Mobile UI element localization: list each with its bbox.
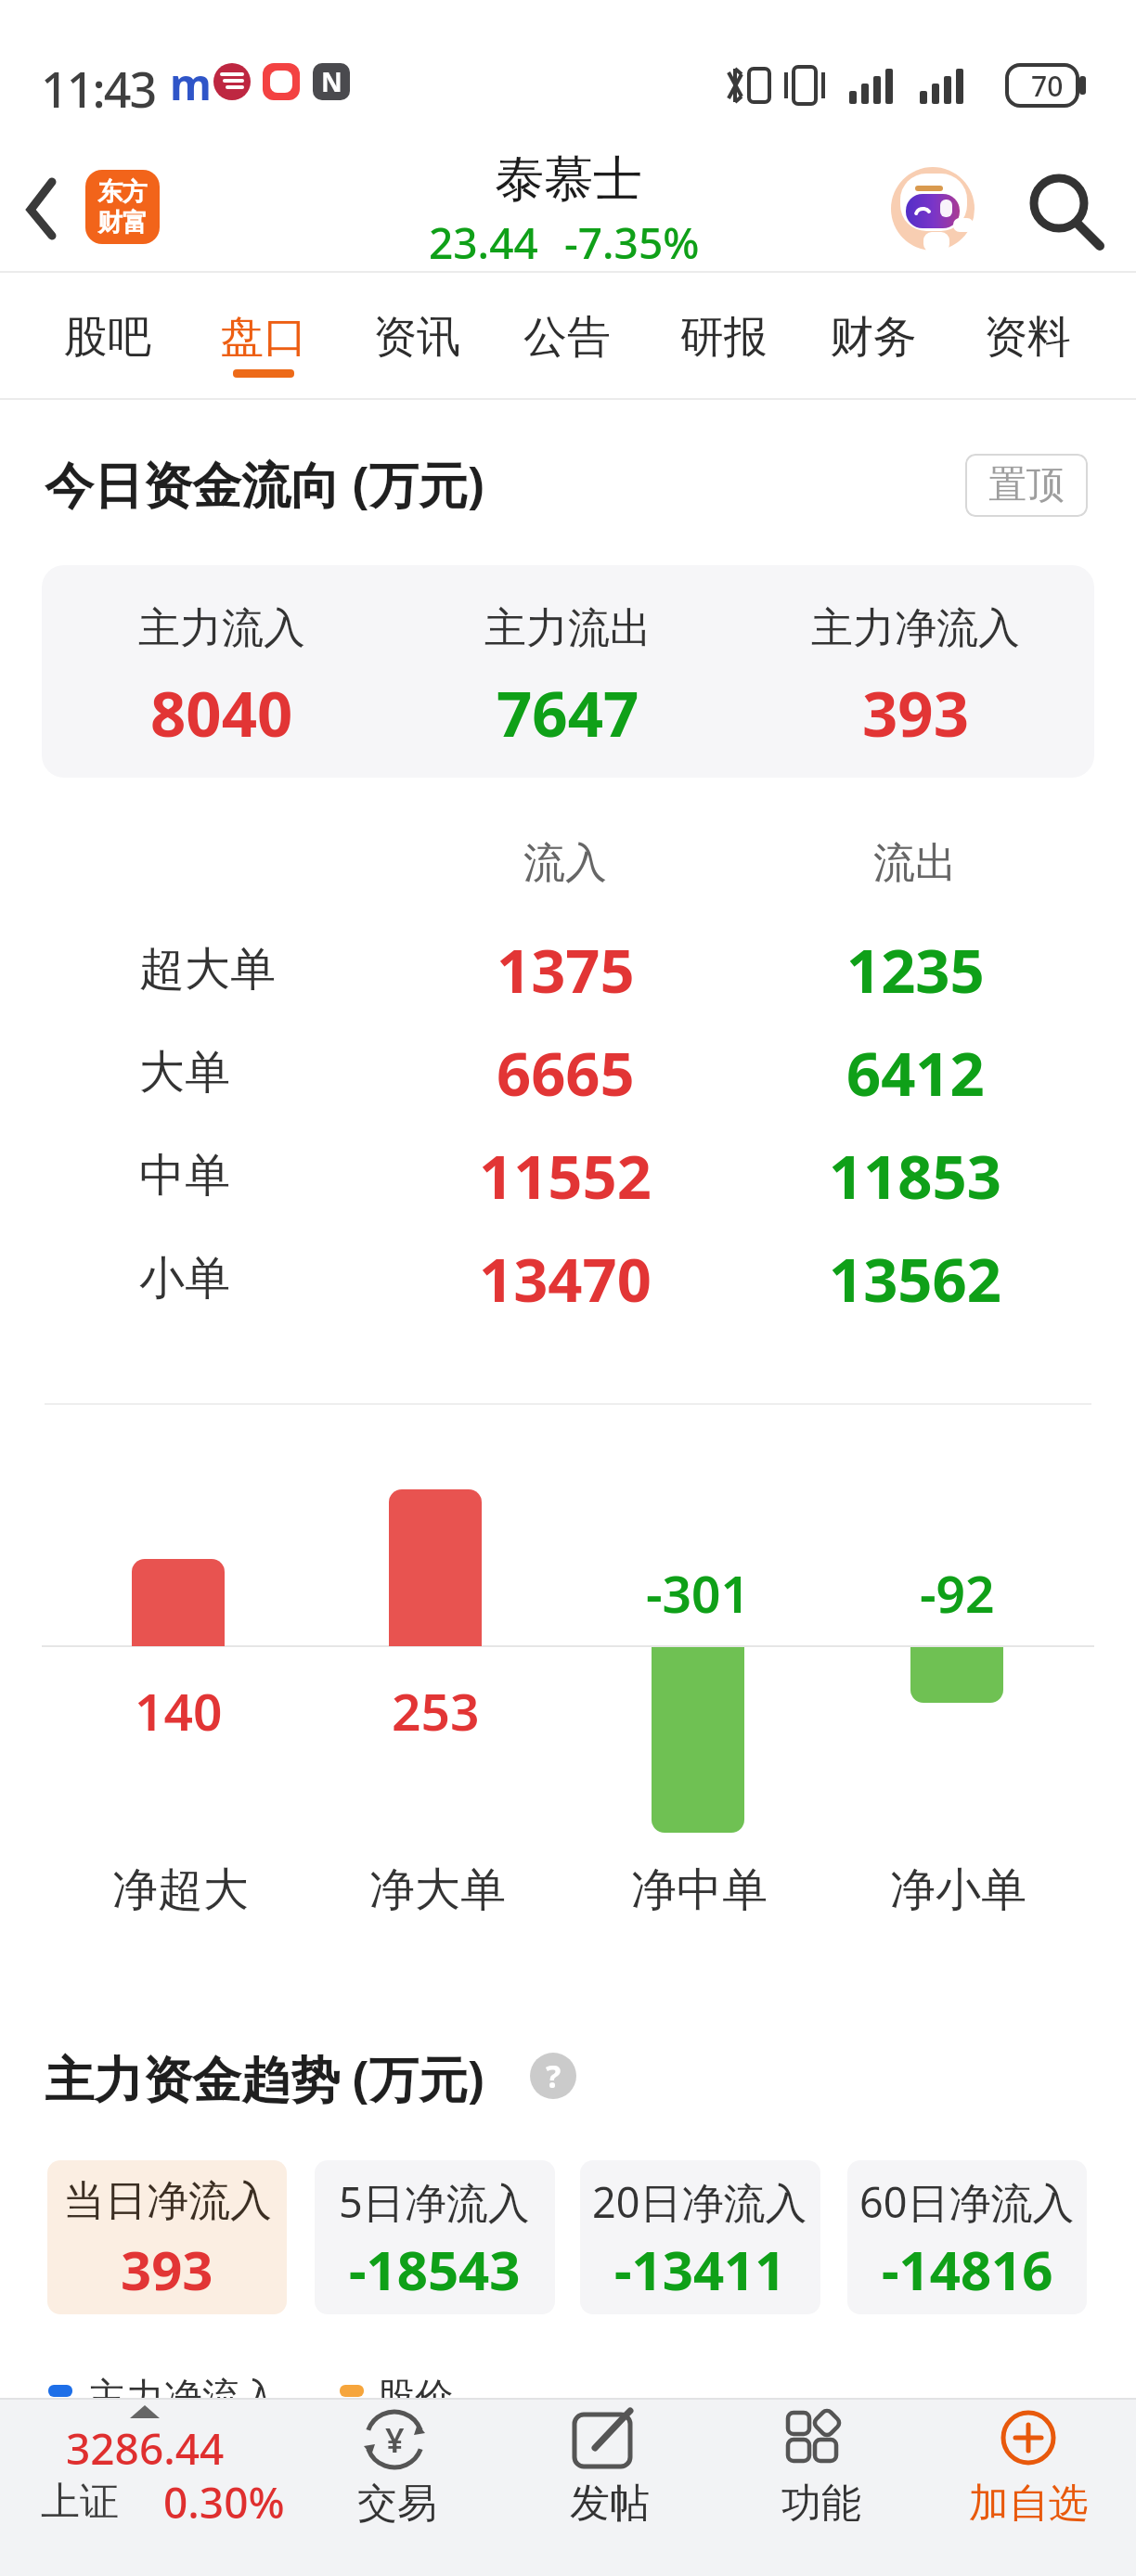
staticText: 20日净流入 — [592, 2173, 807, 2230]
staticText: 主力净流入 — [811, 602, 1020, 655]
button[interactable] — [956, 2403, 1104, 2570]
staticText: -18543 — [349, 2233, 521, 2306]
staticText: N — [321, 64, 342, 99]
staticText: 60日净流入 — [859, 2173, 1075, 2230]
staticText: 主力净流入 — [88, 2374, 278, 2422]
staticText: 7647 — [497, 670, 639, 754]
staticText: 当日净流入 — [63, 2175, 272, 2228]
staticText: 6412 — [846, 1032, 985, 1114]
staticText: 东方 财富 — [97, 176, 148, 238]
staticText: 今日资金流向 (万元) — [45, 450, 484, 517]
staticText: 公告 — [523, 310, 611, 365]
staticText: 3286.44 — [66, 2419, 225, 2478]
staticText: 小单 — [139, 1250, 230, 1307]
button[interactable] — [19, 2403, 288, 2570]
staticText: 置顶 — [988, 461, 1065, 509]
staticText: 140 — [135, 1676, 223, 1745]
staticText: m — [170, 55, 212, 113]
staticText: 资料 — [984, 310, 1071, 365]
staticText: 资讯 — [373, 310, 460, 365]
staticText: 23.44 — [429, 213, 538, 272]
staticText: 5日净流入 — [339, 2173, 530, 2230]
staticText: 11552 — [479, 1135, 652, 1217]
button[interactable] — [580, 2160, 820, 2314]
staticText: 净中单 — [631, 1861, 768, 1919]
staticText: 393 — [862, 670, 969, 754]
staticText: 13562 — [829, 1238, 1001, 1320]
staticText: -7.35% — [564, 213, 700, 272]
staticText: 中单 — [139, 1147, 230, 1204]
staticText: 功能 — [781, 2479, 861, 2529]
button[interactable] — [315, 2160, 555, 2314]
button[interactable] — [538, 2403, 678, 2570]
staticText: 0.30% — [163, 2473, 285, 2531]
staticText: 393 — [121, 2233, 213, 2306]
button[interactable]: 股吧 — [43, 278, 173, 395]
staticText: 流入 — [523, 837, 607, 890]
staticText: 盘口 — [220, 310, 307, 365]
staticText: 交易 — [357, 2479, 437, 2529]
staticText: 研报 — [680, 310, 768, 365]
staticText: ? — [546, 2054, 562, 2097]
staticText: -92 — [920, 1558, 995, 1628]
staticText: 6665 — [497, 1032, 635, 1114]
staticText: 253 — [392, 1676, 480, 1745]
staticText: 净大单 — [369, 1861, 506, 1919]
button[interactable]: 东方 财富 — [85, 170, 160, 244]
staticText: 11853 — [829, 1135, 1001, 1217]
button[interactable]: 公告 — [502, 278, 632, 395]
staticText: 大单 — [139, 1044, 230, 1101]
button[interactable]: 盘口 — [199, 278, 329, 395]
staticText: 11:43 — [41, 56, 156, 115]
staticText: 主力流入 — [138, 602, 305, 655]
staticText: 加自选 — [969, 2479, 1089, 2529]
staticText: 8040 — [150, 670, 293, 754]
staticText: 主力资金趋势 (万元) — [45, 2044, 484, 2111]
button[interactable]: 财务 — [808, 278, 938, 395]
staticText: -13411 — [614, 2233, 786, 2306]
staticText: 13470 — [479, 1238, 652, 1320]
staticText: ¥ — [385, 2417, 405, 2463]
staticText: 发帖 — [570, 2479, 650, 2529]
staticText: 1375 — [497, 929, 635, 1011]
staticText: 股吧 — [64, 310, 151, 365]
staticText: 流出 — [873, 837, 957, 890]
staticText: 主力流出 — [484, 602, 652, 655]
staticText: 1235 — [846, 929, 985, 1011]
staticText: 净小单 — [890, 1861, 1026, 1919]
staticText: 超大单 — [139, 941, 276, 998]
button[interactable] — [847, 2160, 1087, 2314]
staticText: 财务 — [830, 310, 917, 365]
staticText: 净超大 — [112, 1861, 249, 1919]
button[interactable] — [47, 2160, 287, 2314]
button[interactable]: 置顶 — [965, 454, 1088, 517]
staticText: 70 — [1031, 67, 1064, 105]
button[interactable] — [752, 2403, 891, 2570]
button[interactable]: 资讯 — [352, 278, 482, 395]
button[interactable] — [325, 2403, 464, 2570]
staticText: 股价 — [377, 2374, 453, 2422]
button[interactable]: 研报 — [659, 278, 789, 395]
button[interactable] — [9, 167, 74, 251]
button[interactable] — [1016, 160, 1123, 257]
button[interactable]: 资料 — [962, 278, 1092, 395]
button[interactable] — [888, 162, 979, 253]
staticText: -14816 — [882, 2233, 1053, 2306]
staticText: 上证 — [41, 2478, 119, 2527]
staticText: -301 — [646, 1558, 750, 1628]
staticText: 泰慕士 — [495, 148, 642, 211]
